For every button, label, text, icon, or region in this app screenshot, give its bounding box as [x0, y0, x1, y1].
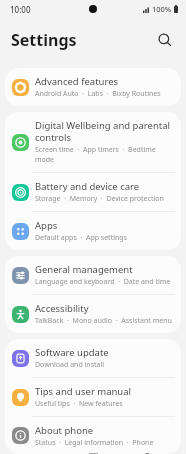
staticText: Language and keyboard · Date and time: [35, 277, 171, 287]
button[interactable]: Tips and user manual: [5, 378, 181, 416]
staticText: Screen time · App timers · Bedtime mode: [35, 145, 173, 165]
staticText: TalkBack · Mono audio · Assistant menu: [35, 316, 172, 326]
button[interactable]: Digital Wellbeing and parental controls: [5, 112, 181, 172]
button[interactable]: Battery and device care: [5, 173, 181, 211]
staticText: General management: [35, 263, 133, 276]
staticText: Download and install: [35, 360, 105, 370]
staticText: Status · Legal information · Phone name: [35, 438, 173, 447]
staticText: Tips and user manual: [35, 385, 132, 398]
button[interactable]: About phone: [5, 417, 181, 454]
button[interactable]: General management: [5, 256, 181, 294]
staticText: Software update: [35, 346, 109, 359]
button[interactable]: Accessibility: [5, 295, 181, 333]
staticText: About phone: [35, 424, 94, 437]
staticText: 100%: [152, 4, 172, 14]
button[interactable]: Software update: [5, 339, 181, 377]
staticText: Battery and device care: [35, 180, 140, 193]
staticText: Digital Wellbeing and parental controls: [35, 119, 170, 144]
staticText: Useful tips · New features: [35, 399, 123, 409]
staticText: Default apps · App settings: [35, 233, 127, 243]
button[interactable]: Search: [152, 27, 178, 53]
staticText: 10:00: [10, 4, 31, 15]
staticText: Apps: [35, 219, 58, 232]
staticText: Storage · Memory · Device protection: [35, 194, 164, 204]
staticText: Advanced features: [35, 75, 119, 88]
staticText: Accessibility: [35, 302, 89, 315]
staticText: Android Auto · Labs · Bixby Routines: [35, 89, 161, 99]
button[interactable]: Apps: [5, 212, 181, 250]
button[interactable]: Advanced features: [5, 68, 181, 106]
staticText: Settings: [11, 29, 77, 51]
